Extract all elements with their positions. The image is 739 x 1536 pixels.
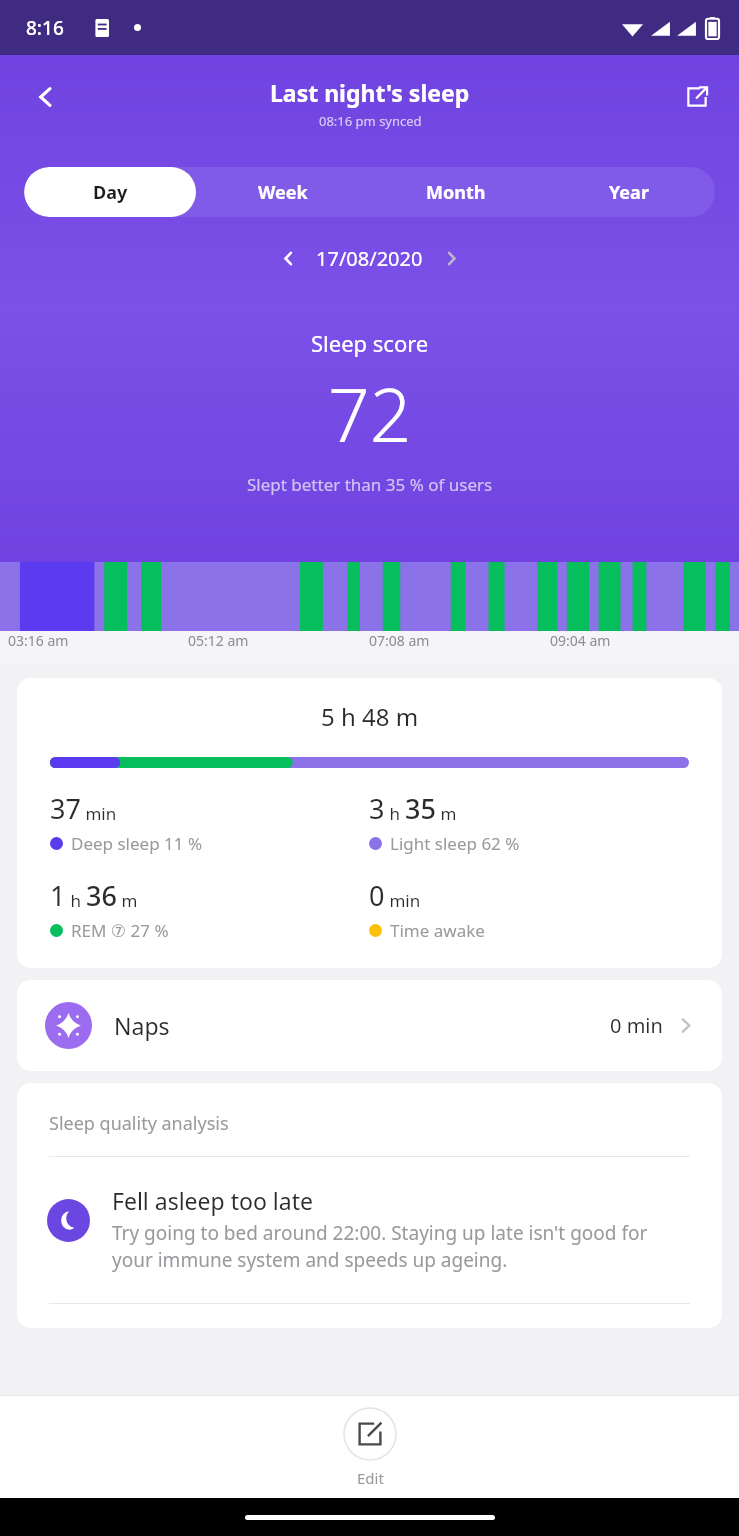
staticText: 3 (369, 790, 385, 827)
staticText: Try going to bed around 22:00. Staying u… (112, 1220, 690, 1273)
staticText: Deep sleep 11 % (71, 832, 203, 855)
button[interactable]: Day (24, 167, 196, 217)
staticText: 0 (369, 877, 385, 914)
staticText: h (385, 802, 405, 825)
staticText: Last night's sleep (270, 77, 470, 108)
staticText: min (81, 802, 117, 825)
staticText: 09:04 am (550, 631, 611, 650)
staticText: m (436, 802, 457, 825)
button[interactable]: Back (22, 73, 70, 121)
button[interactable]: Next day (431, 238, 471, 278)
staticText: 72 (328, 364, 412, 463)
staticText: Edit (357, 1468, 384, 1488)
button[interactable]: Week (196, 167, 369, 217)
button[interactable]: Month (369, 167, 542, 217)
button[interactable]: Edit (319, 1401, 421, 1494)
staticText: 5 h 48 m (50, 700, 689, 733)
staticText: Naps (114, 1010, 170, 1041)
staticText: 03:16 am (8, 631, 69, 650)
staticText: Month (426, 180, 486, 205)
staticText: 8:16 (26, 15, 64, 41)
staticText: 17/08/2020 (316, 245, 423, 272)
staticText: 05:12 am (188, 631, 249, 650)
staticText: Fell asleep too late (112, 1185, 313, 1216)
staticText: Slept better than 35 % of users (247, 473, 493, 496)
staticText: min (385, 889, 421, 912)
staticText: 0 min (610, 1012, 663, 1039)
staticText: h (66, 889, 86, 912)
staticText: Week (258, 180, 308, 205)
staticText: REM ⑦ 27 % (71, 919, 169, 942)
staticText: Sleep quality analysis (49, 1111, 229, 1136)
staticText: Time awake (390, 919, 485, 942)
staticText: Day (93, 180, 128, 205)
staticText: Sleep score (311, 328, 429, 358)
staticText: m (117, 889, 138, 912)
staticText: 37 (50, 790, 81, 827)
staticText: Year (609, 180, 649, 205)
button[interactable]: Share (673, 73, 721, 121)
staticText: 35 (405, 790, 436, 827)
button[interactable]: Naps (17, 980, 722, 1071)
button[interactable]: Year (542, 167, 715, 217)
staticText: 07:08 am (369, 631, 430, 650)
staticText: 1 (50, 877, 66, 914)
staticText: 08:16 pm synced (319, 112, 422, 130)
staticText: 36 (86, 877, 117, 914)
staticText: Light sleep 62 % (390, 832, 520, 855)
button[interactable]: Previous day (268, 238, 308, 278)
button[interactable]: Fell asleep too late (17, 1157, 722, 1303)
